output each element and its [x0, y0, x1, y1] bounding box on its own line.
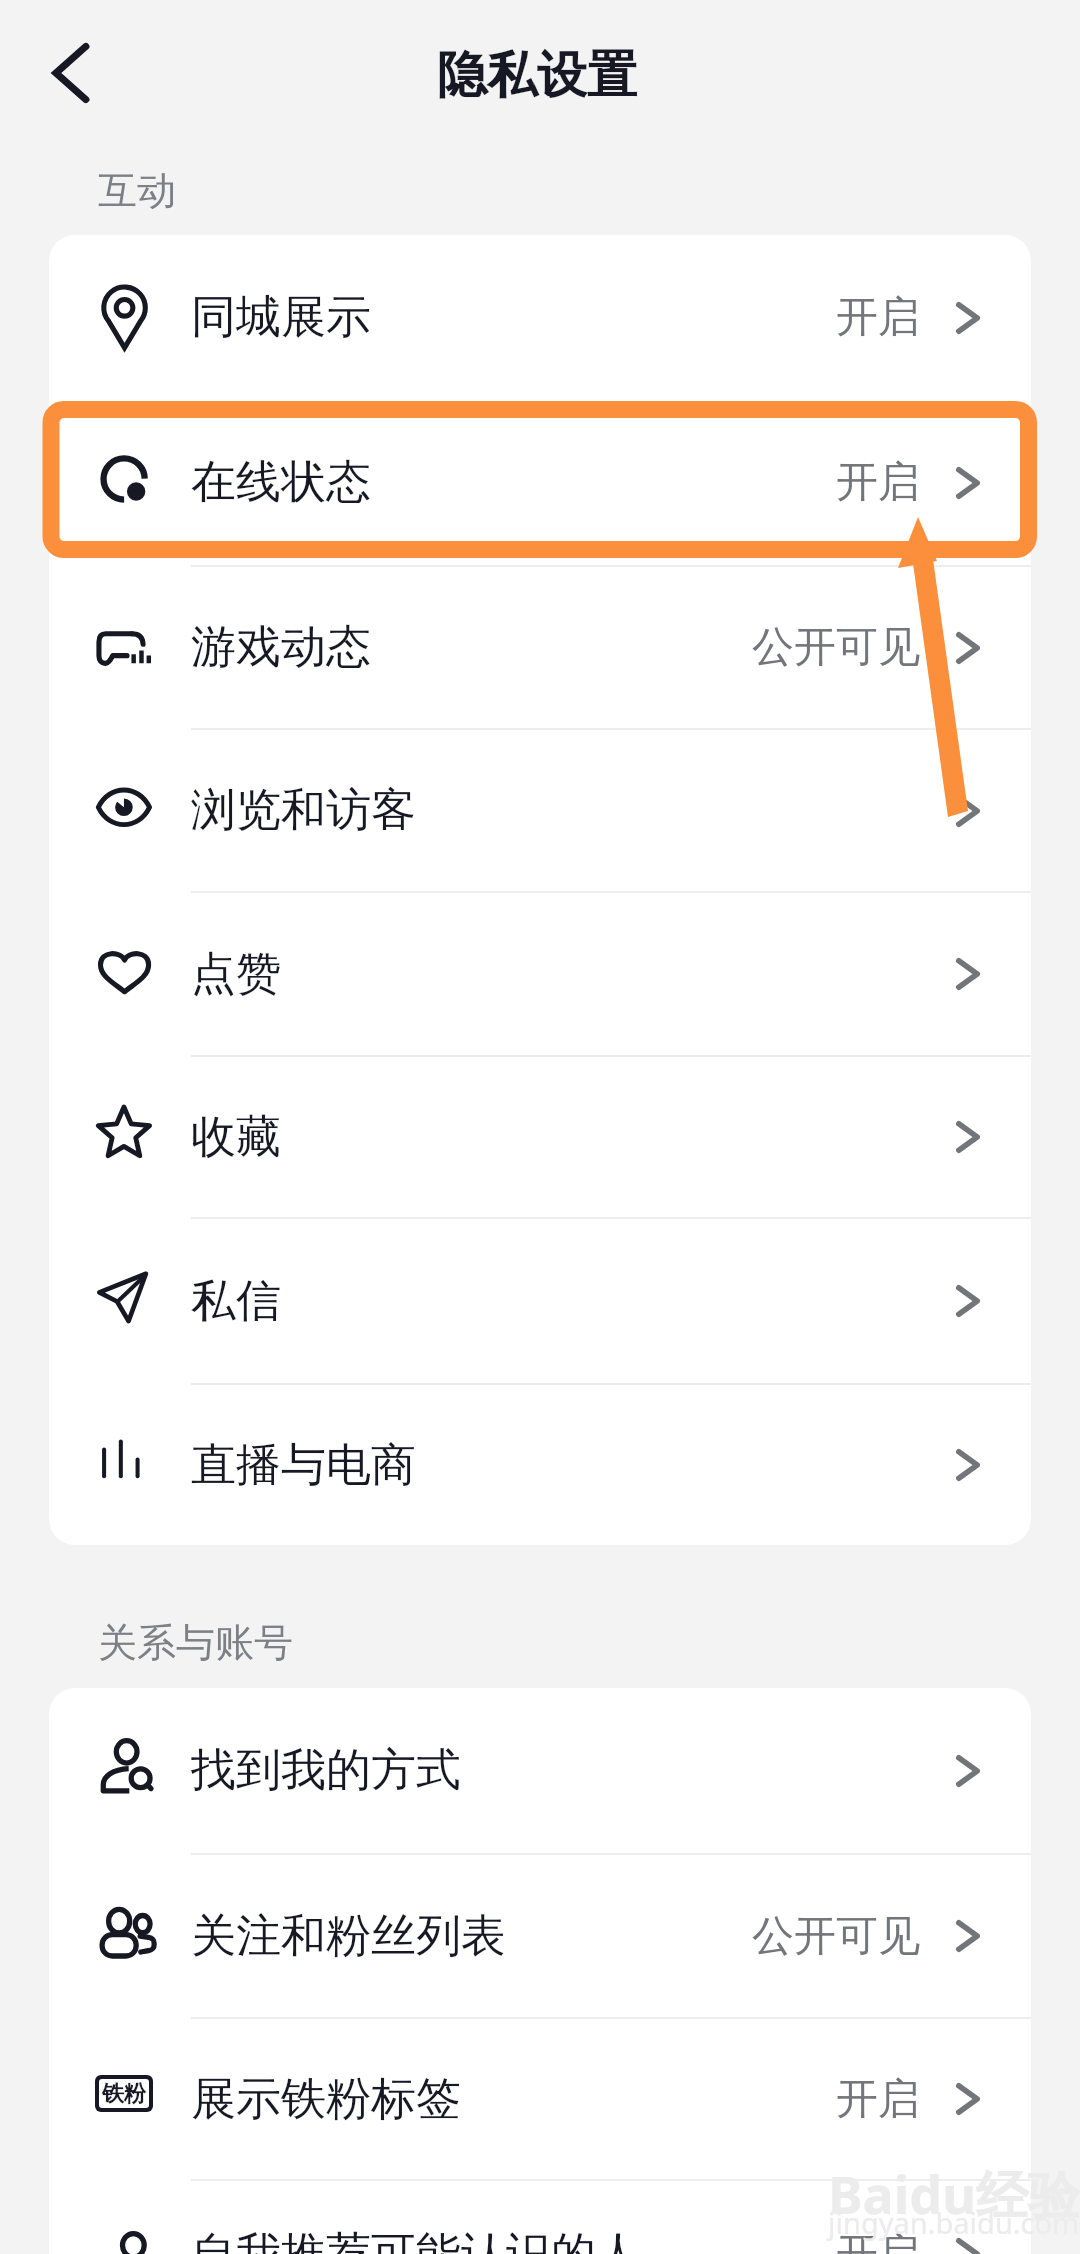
staticText: 关系与账号 [98, 1618, 293, 1667]
staticText: Baidu经验 [828, 2158, 1080, 2229]
button[interactable]: 关注和粉丝列表 [49, 1855, 1031, 2017]
staticText: 在线状态 [191, 454, 371, 511]
staticText: 开启 [836, 291, 920, 344]
staticText: 隐私设置 [437, 44, 637, 107]
staticText: jingyan.baidu.com [828, 2203, 1080, 2242]
staticText: 点赞 [191, 946, 281, 1003]
staticText: 收藏 [191, 1109, 281, 1166]
button[interactable]: 在线状态 [49, 400, 1031, 565]
button[interactable]: 点赞 [49, 893, 1031, 1055]
staticText: 关注和粉丝列表 [191, 1908, 506, 1965]
staticText: 直播与电商 [191, 1437, 416, 1494]
staticText: 公开可见 [752, 621, 920, 674]
button[interactable]: 找到我的方式 [49, 1688, 1031, 1853]
staticText: 自我推荐可能认识的人 [191, 2226, 641, 2254]
staticText: 浏览和访客 [191, 782, 416, 839]
button[interactable]: 私信 [49, 1219, 1031, 1383]
button[interactable]: 浏览和访客 [49, 730, 1031, 891]
button[interactable]: Back [18, 18, 128, 128]
staticText: 展示铁粉标签 [191, 2071, 461, 2128]
staticText: 铁粉 [102, 2080, 146, 2108]
button[interactable]: 自我推荐可能认识的人 [49, 2181, 1031, 2254]
staticText: 游戏动态 [191, 619, 371, 676]
button[interactable]: 铁粉 [49, 2019, 1031, 2179]
staticText: 公开可见 [752, 1910, 920, 1963]
staticText: 同城展示 [191, 289, 371, 346]
staticText: 互动 [98, 166, 176, 215]
staticText: 找到我的方式 [191, 1742, 461, 1799]
staticText: 开启 [836, 2073, 920, 2126]
button[interactable]: 游戏动态 [49, 567, 1031, 728]
button[interactable]: 直播与电商 [49, 1385, 1031, 1545]
staticText: 开启 [836, 456, 920, 509]
button[interactable]: 同城展示 [49, 235, 1031, 400]
button[interactable]: 收藏 [49, 1057, 1031, 1217]
staticText: 私信 [191, 1273, 281, 1330]
staticText: 开启 [836, 2228, 920, 2254]
